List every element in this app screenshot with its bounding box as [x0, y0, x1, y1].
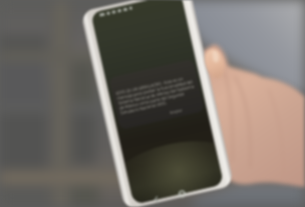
button[interactable]: Alerta [0, 0, 305, 207]
